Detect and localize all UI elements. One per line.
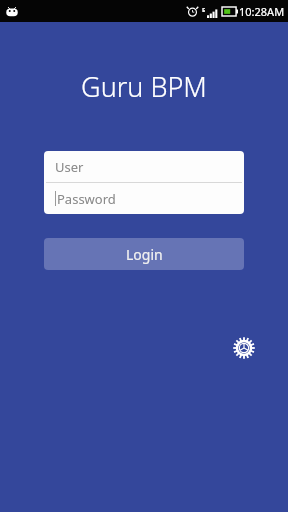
staticText: E	[202, 6, 206, 14]
button[interactable]: User	[44, 151, 244, 182]
button[interactable]: Login	[44, 238, 244, 270]
button[interactable]: Settings	[228, 332, 260, 364]
staticText: User	[55, 158, 84, 176]
staticText: Login	[126, 245, 163, 264]
staticText: Password	[57, 190, 116, 208]
staticText: 10:28AM	[239, 4, 285, 19]
button[interactable]: Password	[44, 183, 244, 214]
staticText: Guru BPM	[81, 68, 207, 105]
